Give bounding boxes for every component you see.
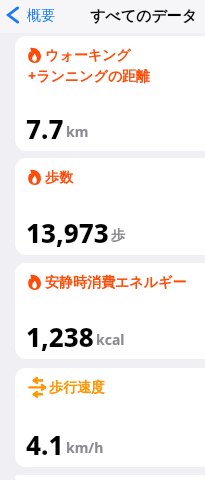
button[interactable]: 安静時消費エネルギー (15, 263, 205, 359)
staticText: 1,238 (26, 319, 94, 354)
button[interactable]: ウォーキング (15, 36, 205, 151)
button[interactable]: 歩行速度 (15, 368, 205, 467)
staticText: すべてのデータ (90, 7, 198, 26)
staticText: 7.7 (26, 111, 64, 146)
button[interactable]: 歩数 (15, 158, 205, 255)
staticText: 4.1 (26, 427, 64, 462)
staticText: 歩数 (45, 169, 73, 187)
staticText: ウォーキング (45, 47, 131, 65)
staticText: kcal (96, 330, 125, 349)
staticText: +ランニングの距離 (28, 66, 151, 85)
staticText: 概要 (27, 7, 55, 25)
staticText: 歩行速度 (49, 379, 105, 397)
button[interactable]: 戻る (0, 0, 63, 28)
staticText: 歩 (111, 227, 125, 245)
staticText: km/h (66, 438, 104, 457)
other: 戻る (6, 7, 19, 23)
staticText: 13,973 (26, 215, 109, 250)
staticText: km (66, 122, 89, 141)
staticText: 安静時消費エネルギー (45, 274, 187, 292)
